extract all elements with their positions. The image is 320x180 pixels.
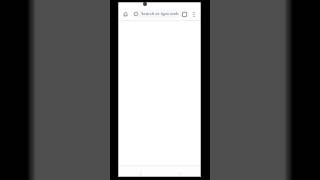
- button[interactable]: More options: [189, 9, 199, 19]
- staticText: Search or type web address: [141, 11, 182, 17]
- button[interactable]: Home: [120, 8, 131, 20]
- button[interactable]: Search or type web address: [133, 10, 182, 18]
- button[interactable]: Switch or open tabs: [179, 9, 189, 19]
